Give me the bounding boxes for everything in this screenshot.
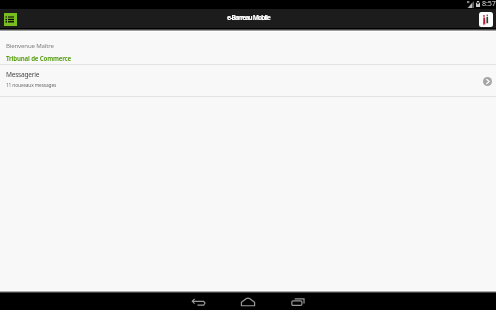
button[interactable]: Recents	[283, 294, 312, 310]
staticText: 11 nouveaux messages	[6, 82, 57, 89]
staticText: 8:57	[482, 0, 496, 7]
staticText: e-Barreau Mobile	[227, 13, 270, 22]
staticText: Messagerie	[6, 70, 40, 79]
staticText: Bienvenue Maître	[6, 41, 54, 49]
staticText: Tribunal de Commerce	[6, 54, 72, 62]
button[interactable]: Back	[184, 294, 213, 310]
button[interactable]: Messagerie	[0, 65, 496, 96]
button[interactable]: Menu	[4, 13, 17, 26]
button[interactable]: Bienvenue Maître	[0, 32, 496, 64]
button[interactable]: Home	[233, 294, 263, 310]
button[interactable]: Application logo	[479, 12, 493, 27]
